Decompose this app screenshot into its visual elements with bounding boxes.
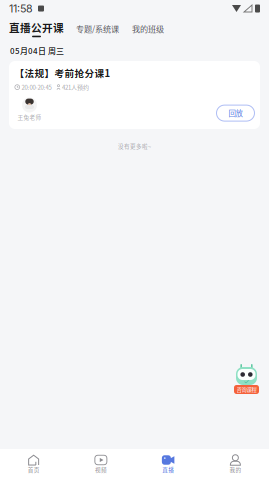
button[interactable]: 视频 <box>67 449 134 477</box>
staticText: 咨询课程 <box>236 386 256 393</box>
staticText: 我的班级 <box>132 23 164 34</box>
staticText: 直播 <box>162 465 174 474</box>
staticText: 11:58 <box>9 2 33 15</box>
staticText: 直播公开课 <box>9 20 64 35</box>
button[interactable]: 首页 <box>0 449 67 477</box>
staticText: 王兔老师 <box>17 113 41 121</box>
staticText: 05月04日 周三 <box>10 45 64 56</box>
button[interactable]: 专题/系统课 <box>76 20 119 34</box>
staticText: 专题/系统课 <box>76 23 119 34</box>
staticText: 【法规】考前抢分课1 <box>14 66 110 80</box>
staticText: 我的 <box>229 465 241 474</box>
staticText: 回放 <box>228 108 242 118</box>
staticText: ✓ <box>243 377 249 386</box>
staticText: 20:00-20:45 <box>21 83 51 91</box>
button[interactable]: 我的 <box>202 449 269 477</box>
button[interactable]: 回放 <box>216 105 254 121</box>
button[interactable]: 直播 <box>134 449 202 477</box>
button[interactable]: 咨询课程 <box>234 364 259 394</box>
button[interactable]: 直播公开课 <box>9 20 64 37</box>
button[interactable]: 【法规】考前抢分课1 <box>9 61 260 129</box>
staticText: 421人预约 <box>62 83 89 91</box>
staticText: 视频 <box>95 465 107 474</box>
staticText: 首页 <box>28 465 40 474</box>
button[interactable]: 我的班级 <box>132 20 164 34</box>
staticText: 没有更多啦~ <box>118 142 151 150</box>
